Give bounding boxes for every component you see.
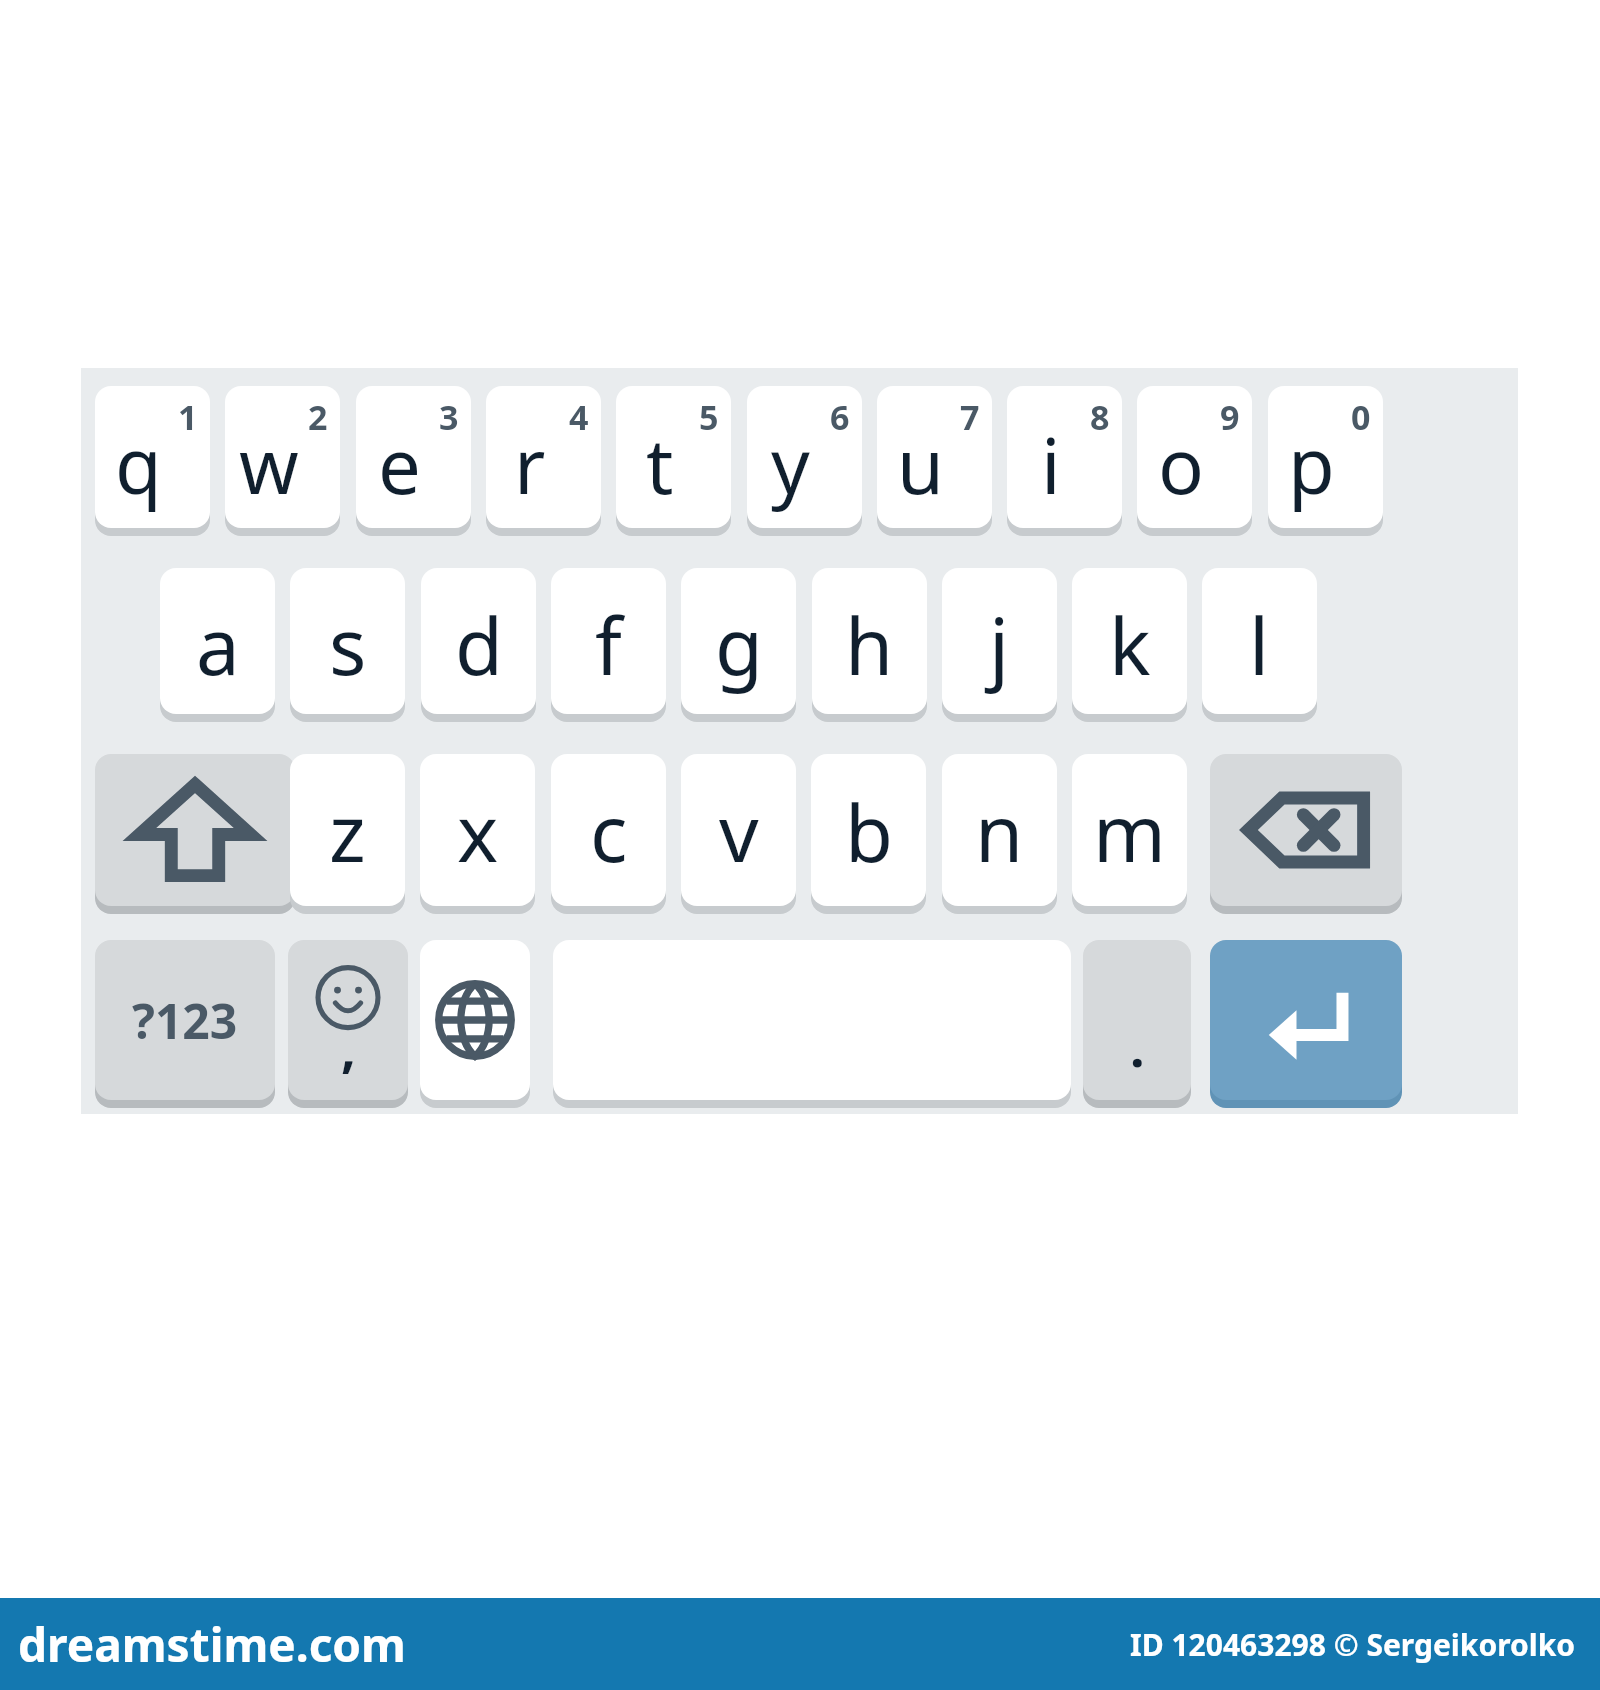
button[interactable]: Shift bbox=[95, 754, 295, 906]
staticText: w bbox=[239, 413, 299, 517]
button[interactable]: l bbox=[1202, 568, 1317, 714]
staticText: m bbox=[1093, 779, 1166, 885]
button[interactable]: y bbox=[747, 386, 862, 528]
staticText: x bbox=[457, 779, 499, 885]
staticText: h bbox=[845, 592, 894, 698]
button[interactable]: i bbox=[1007, 386, 1122, 528]
staticText: v bbox=[719, 779, 759, 885]
button[interactable]: p bbox=[1268, 386, 1383, 528]
staticText: 4 bbox=[569, 394, 589, 440]
staticText: g bbox=[715, 592, 763, 698]
button[interactable]: c bbox=[551, 754, 666, 906]
staticText: p bbox=[1288, 413, 1335, 517]
button[interactable]: . bbox=[1083, 940, 1191, 1100]
staticText: ID 120463298 © Sergeikorolko bbox=[1130, 1624, 1576, 1665]
button[interactable]: o bbox=[1137, 386, 1252, 528]
button[interactable]: f bbox=[551, 568, 666, 714]
staticText: z bbox=[329, 779, 366, 885]
button[interactable]: s bbox=[290, 568, 405, 714]
button[interactable]: ?123 bbox=[95, 940, 275, 1100]
staticText: . bbox=[1130, 1011, 1145, 1082]
staticText: i bbox=[1041, 413, 1061, 517]
button[interactable]: d bbox=[421, 568, 536, 714]
staticText: s bbox=[329, 592, 367, 698]
staticText: y bbox=[771, 413, 810, 517]
button[interactable]: e bbox=[356, 386, 471, 528]
staticText: ?123 bbox=[132, 988, 238, 1053]
staticText: dreamstime.com bbox=[18, 1613, 406, 1676]
staticText: 9 bbox=[1220, 394, 1240, 440]
button[interactable]: t bbox=[616, 386, 731, 528]
staticText: e bbox=[378, 413, 421, 517]
button[interactable]: n bbox=[942, 754, 1057, 906]
button[interactable]: q bbox=[95, 386, 210, 528]
button[interactable]: Change language bbox=[420, 940, 530, 1100]
button[interactable]: x bbox=[420, 754, 535, 906]
button[interactable]: r bbox=[486, 386, 601, 528]
staticText: 2 bbox=[308, 394, 328, 440]
button[interactable]: Enter bbox=[1210, 940, 1402, 1100]
staticText: 8 bbox=[1090, 394, 1110, 440]
staticText: c bbox=[590, 779, 628, 885]
button[interactable]: a bbox=[160, 568, 275, 714]
staticText: 1 bbox=[178, 394, 198, 440]
staticText: , bbox=[341, 1011, 356, 1082]
button[interactable]: Backspace bbox=[1210, 754, 1402, 906]
staticText: k bbox=[1109, 592, 1151, 698]
button[interactable]: u bbox=[877, 386, 992, 528]
staticText: 6 bbox=[830, 394, 850, 440]
staticText: 5 bbox=[699, 394, 719, 440]
button[interactable]: Emoji and comma bbox=[288, 940, 408, 1100]
button[interactable]: v bbox=[681, 754, 796, 906]
button[interactable]: j bbox=[942, 568, 1057, 714]
staticText: t bbox=[646, 413, 674, 517]
staticText: 7 bbox=[960, 394, 980, 440]
button[interactable]: b bbox=[811, 754, 926, 906]
staticText: o bbox=[1158, 413, 1204, 517]
button[interactable]: m bbox=[1072, 754, 1187, 906]
staticText: 0 bbox=[1351, 394, 1371, 440]
staticText: l bbox=[1249, 592, 1270, 698]
button[interactable]: g bbox=[681, 568, 796, 714]
staticText: n bbox=[975, 779, 1024, 885]
staticText: b bbox=[845, 779, 893, 885]
staticText: a bbox=[196, 592, 240, 698]
button[interactable]: k bbox=[1072, 568, 1187, 714]
button[interactable]: w bbox=[225, 386, 340, 528]
staticText: u bbox=[897, 413, 944, 517]
staticText: j bbox=[989, 592, 1010, 698]
staticText: 3 bbox=[439, 394, 459, 440]
staticText: d bbox=[455, 592, 503, 698]
staticText: q bbox=[115, 413, 162, 517]
button[interactable]: z bbox=[290, 754, 405, 906]
button[interactable]: h bbox=[812, 568, 927, 714]
staticText: f bbox=[595, 592, 622, 698]
staticText: r bbox=[514, 413, 546, 517]
